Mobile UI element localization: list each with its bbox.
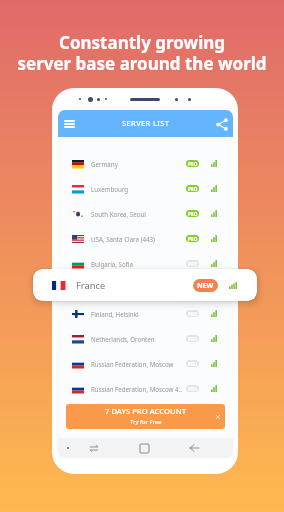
staticText: PRO — [188, 336, 198, 342]
button[interactable]: Back — [186, 440, 202, 456]
staticText: PRO — [188, 236, 198, 242]
staticText: Bulgaria, Sofia — [91, 260, 133, 268]
staticText: Russian Federation, Moscow — [91, 360, 174, 368]
button[interactable]: Menu — [60, 115, 78, 133]
staticText: Luxembourg — [91, 185, 129, 193]
staticText: PRO — [188, 211, 198, 217]
staticText: Germany — [91, 160, 118, 168]
staticText: 7 DAYS PRO ACCOUNT — [105, 406, 187, 416]
button[interactable]: France — [58, 276, 233, 301]
staticText: PRO — [188, 286, 198, 292]
staticText: PRO — [188, 311, 198, 317]
button[interactable]: Close — [216, 415, 220, 419]
staticText: PRO — [188, 361, 198, 367]
staticText: PRO — [188, 261, 198, 267]
staticText: NEW — [197, 281, 214, 291]
button[interactable]: Luxembourg — [58, 176, 233, 201]
staticText: Try for Free — [130, 418, 162, 426]
button[interactable]: Netherlands, Oronten — [58, 326, 233, 351]
staticText: Finland, Helsinki — [91, 310, 139, 318]
button[interactable]: Russian Federation, Moscow — [58, 351, 233, 376]
button[interactable]: Home — [136, 440, 152, 456]
staticText: PRO — [188, 186, 198, 192]
staticText: PRO — [188, 386, 198, 392]
staticText: SERVER LIST — [122, 118, 170, 128]
button[interactable]: Share — [213, 115, 231, 133]
button[interactable]: 7 DAYS PRO ACCOUNT — [66, 404, 225, 429]
staticText: PRO — [188, 161, 198, 167]
staticText: Constantly growing server base around th… — [0, 31, 284, 75]
staticText: South Korea, Seoul — [91, 210, 146, 218]
button[interactable]: Bulgaria, Sofia — [58, 251, 233, 276]
button[interactable]: Germany — [58, 151, 233, 176]
button[interactable]: Finland, Helsinki — [58, 301, 233, 326]
button[interactable]: Assistant — [60, 440, 76, 456]
staticText: France — [76, 279, 106, 292]
staticText: USA, Santa Clara (443) — [91, 235, 155, 243]
button[interactable]: USA, Santa Clara (443) — [58, 226, 233, 251]
button[interactable]: South Korea, Seoul — [58, 201, 233, 226]
staticText: France — [91, 285, 111, 293]
button[interactable]: France — [33, 269, 257, 301]
staticText: Netherlands, Oronten — [91, 335, 155, 343]
button[interactable]: Russian Federation, Moscow 4.. — [58, 376, 233, 401]
button[interactable]: Recents — [86, 440, 102, 456]
staticText: Russian Federation, Moscow 4.. — [91, 385, 182, 393]
